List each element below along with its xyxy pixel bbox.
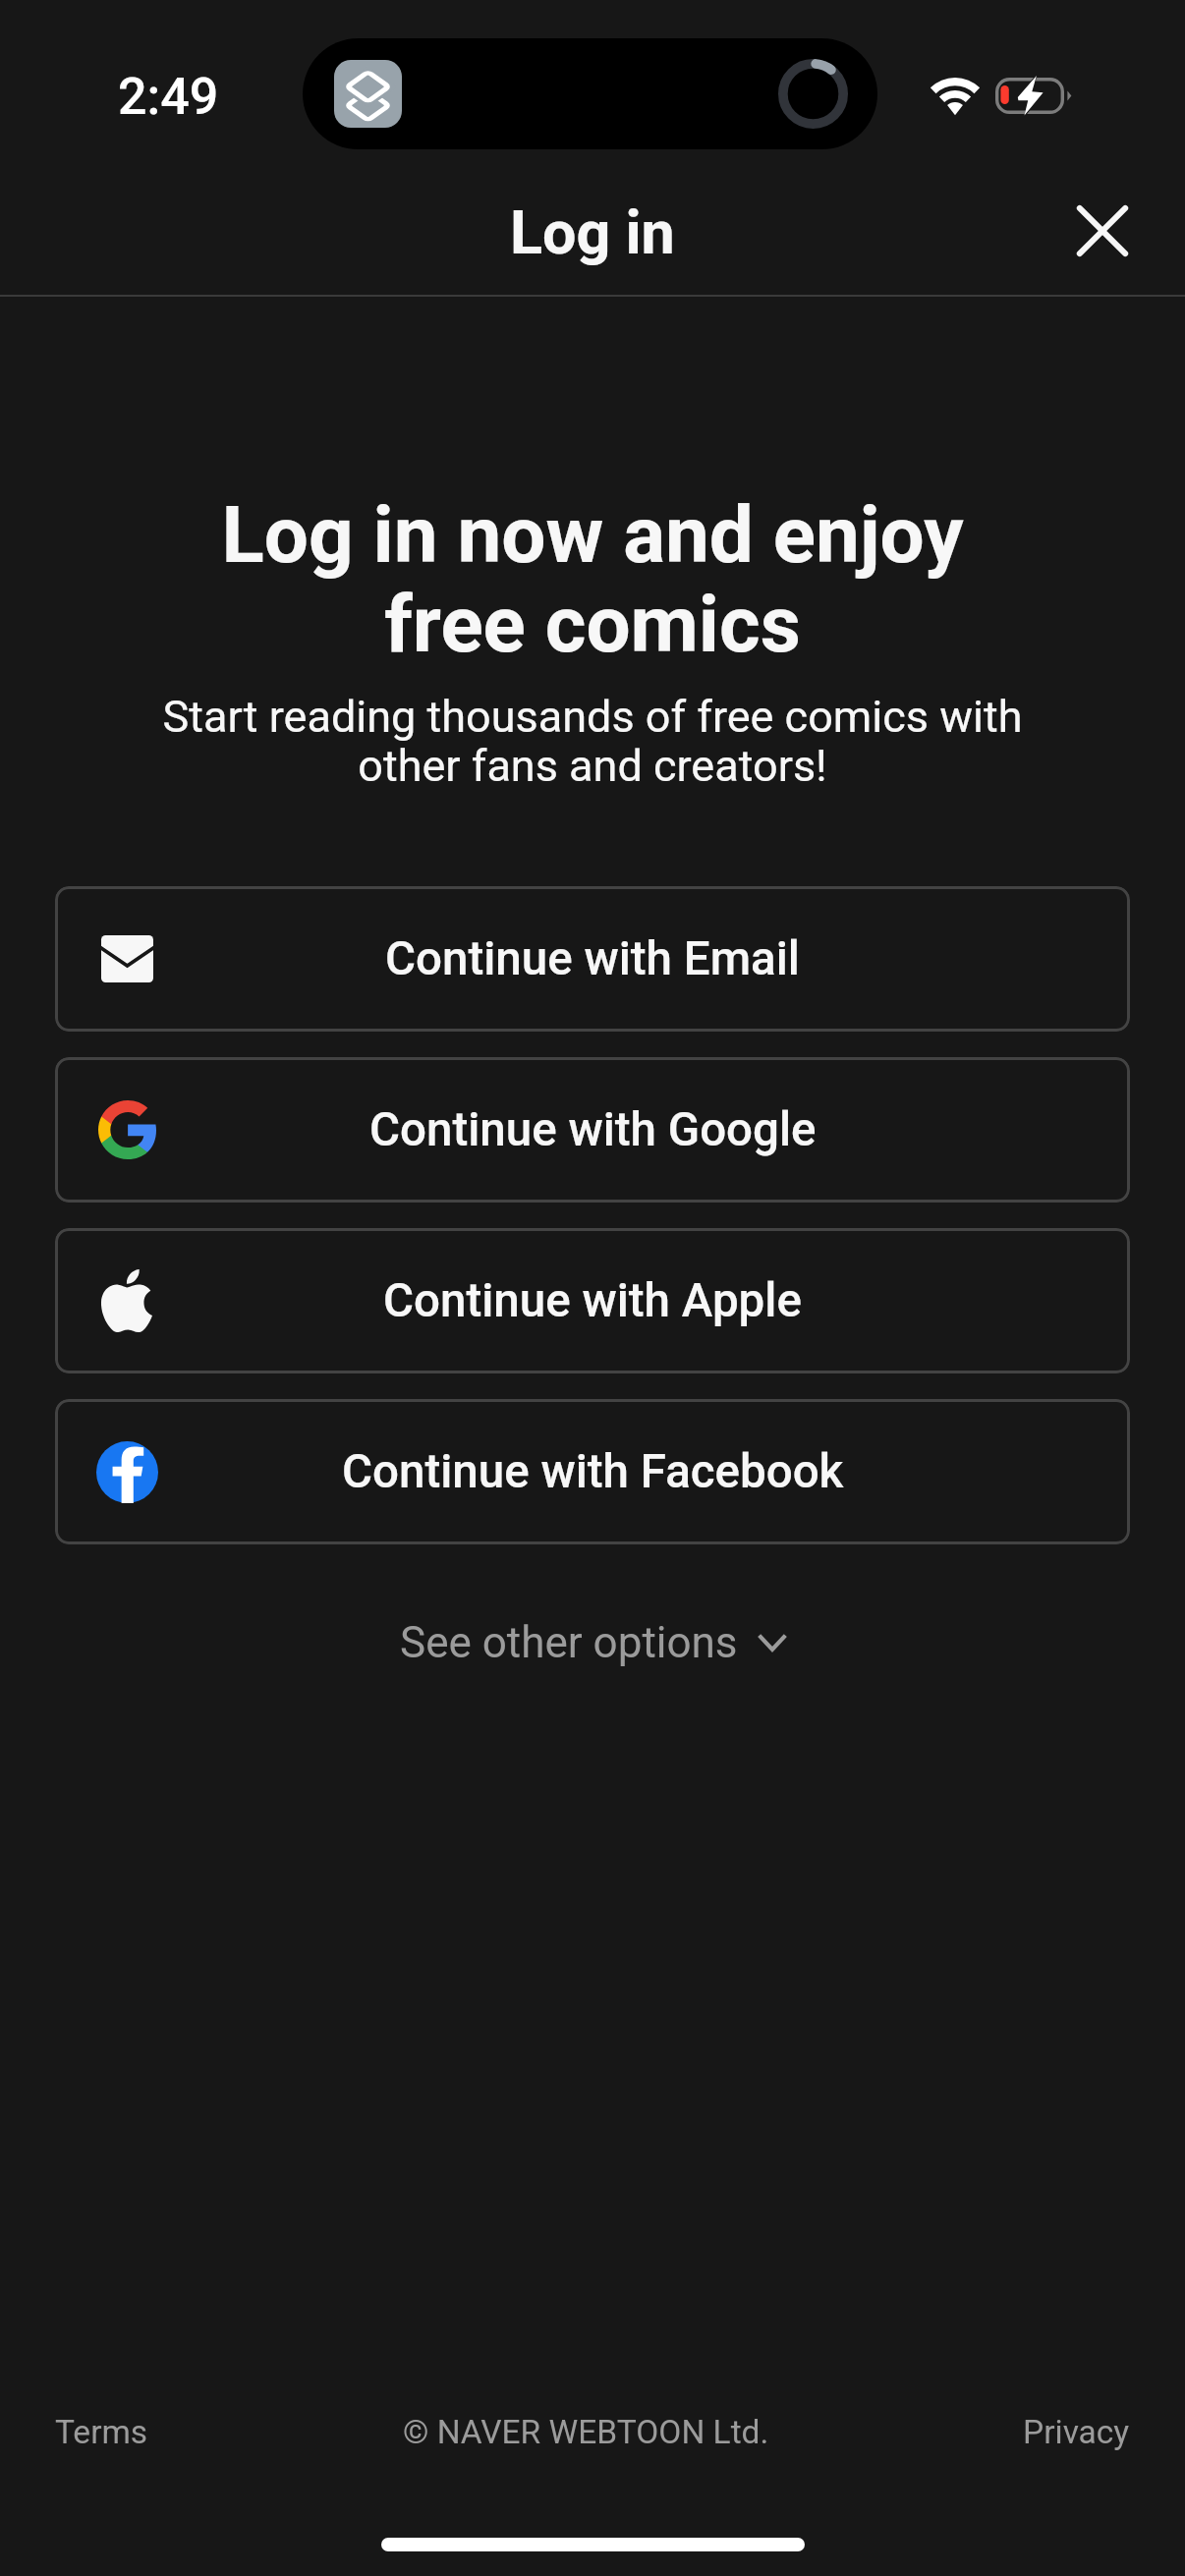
staticText: See other options: [400, 1617, 738, 1668]
button[interactable]: See other options: [376, 1596, 810, 1690]
staticText: Continue with Facebook: [342, 1444, 844, 1499]
button[interactable]: Continue with Apple: [55, 1228, 1130, 1373]
staticText: Log in: [510, 197, 675, 267]
staticText: Continue with Google: [369, 1102, 817, 1157]
button[interactable]: Continue with Facebook: [55, 1399, 1130, 1544]
staticText: 2:49: [118, 67, 219, 127]
button[interactable]: Privacy: [1017, 2403, 1136, 2461]
staticText: Continue with Apple: [383, 1273, 802, 1328]
button[interactable]: Continue with Email: [55, 886, 1130, 1032]
button[interactable]: Terms: [49, 2403, 154, 2461]
staticText: Start reading thousands of free comics w…: [0, 691, 1185, 792]
staticText: Terms: [55, 2413, 148, 2451]
staticText: © NAVER WEBTOON Ltd.: [403, 2413, 769, 2451]
button[interactable]: Close: [1062, 191, 1143, 271]
staticText: Privacy: [1023, 2413, 1130, 2451]
staticText: Log in now and enjoy free comics: [0, 489, 1185, 671]
staticText: Continue with Email: [385, 931, 800, 986]
button[interactable]: Continue with Google: [55, 1057, 1130, 1203]
